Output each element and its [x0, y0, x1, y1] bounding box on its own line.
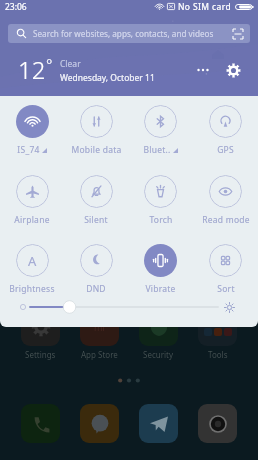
button[interactable]: Bluet.. [128, 105, 193, 156]
button[interactable]: IS_74 [0, 105, 64, 156]
button[interactable]: Sort [193, 244, 258, 295]
staticText: 12 [18, 53, 46, 86]
staticText: A [28, 252, 37, 270]
staticText: Vibrate [145, 283, 176, 295]
button[interactable] [30, 300, 218, 314]
staticText: mi [94, 321, 105, 333]
staticText: No SIM card [178, 1, 232, 13]
staticText: DND [86, 283, 106, 295]
button[interactable]: Settings [21, 307, 60, 360]
staticText: Silent [84, 214, 108, 226]
staticText: App Store [81, 349, 118, 360]
button[interactable]: Search for websites, apps, contacts, and… [8, 24, 250, 43]
button[interactable]: Settings [222, 59, 244, 81]
staticText: Bluet.. [143, 144, 171, 156]
button[interactable]: tg [139, 404, 178, 443]
button[interactable]: mi [80, 307, 119, 360]
staticText: IS_74 [17, 144, 40, 156]
button[interactable]: Read mode [193, 175, 258, 226]
button[interactable]: GPS [193, 105, 258, 156]
staticText: Clear [60, 58, 81, 70]
staticText: Wednesday, October 11 [60, 72, 155, 84]
button[interactable]: Torch [128, 175, 193, 226]
button[interactable]: Silent [64, 175, 128, 226]
staticText: Security [143, 349, 174, 360]
other: Scan [233, 29, 243, 39]
button[interactable]: cam [198, 404, 237, 443]
button[interactable]: A [0, 244, 64, 295]
staticText: Settings [25, 349, 56, 360]
staticText: ° [46, 54, 53, 74]
staticText: Read mode [202, 214, 250, 226]
button[interactable]: sms [80, 404, 119, 443]
staticText: GPS [217, 144, 234, 156]
button[interactable]: Vibrate [128, 244, 193, 295]
button[interactable]: phone [21, 404, 60, 443]
button[interactable]: More [192, 59, 214, 81]
staticText: Brightness [9, 283, 55, 295]
staticText: Torch [149, 214, 173, 226]
button[interactable]: Security [139, 307, 178, 360]
staticText: 23:06 [5, 1, 27, 13]
staticText: Tools [208, 349, 228, 360]
staticText: Mobile data [71, 144, 122, 156]
button[interactable]: 12 [18, 53, 155, 86]
button[interactable]: Tools [198, 307, 237, 360]
staticText: Airplane [14, 214, 50, 226]
staticText: Search for websites, apps, contacts, and… [33, 28, 214, 39]
button[interactable]: Mobile data [64, 105, 128, 156]
button[interactable]: DND [64, 244, 128, 295]
button[interactable]: Airplane [0, 175, 64, 226]
staticText: Sort [217, 283, 235, 295]
